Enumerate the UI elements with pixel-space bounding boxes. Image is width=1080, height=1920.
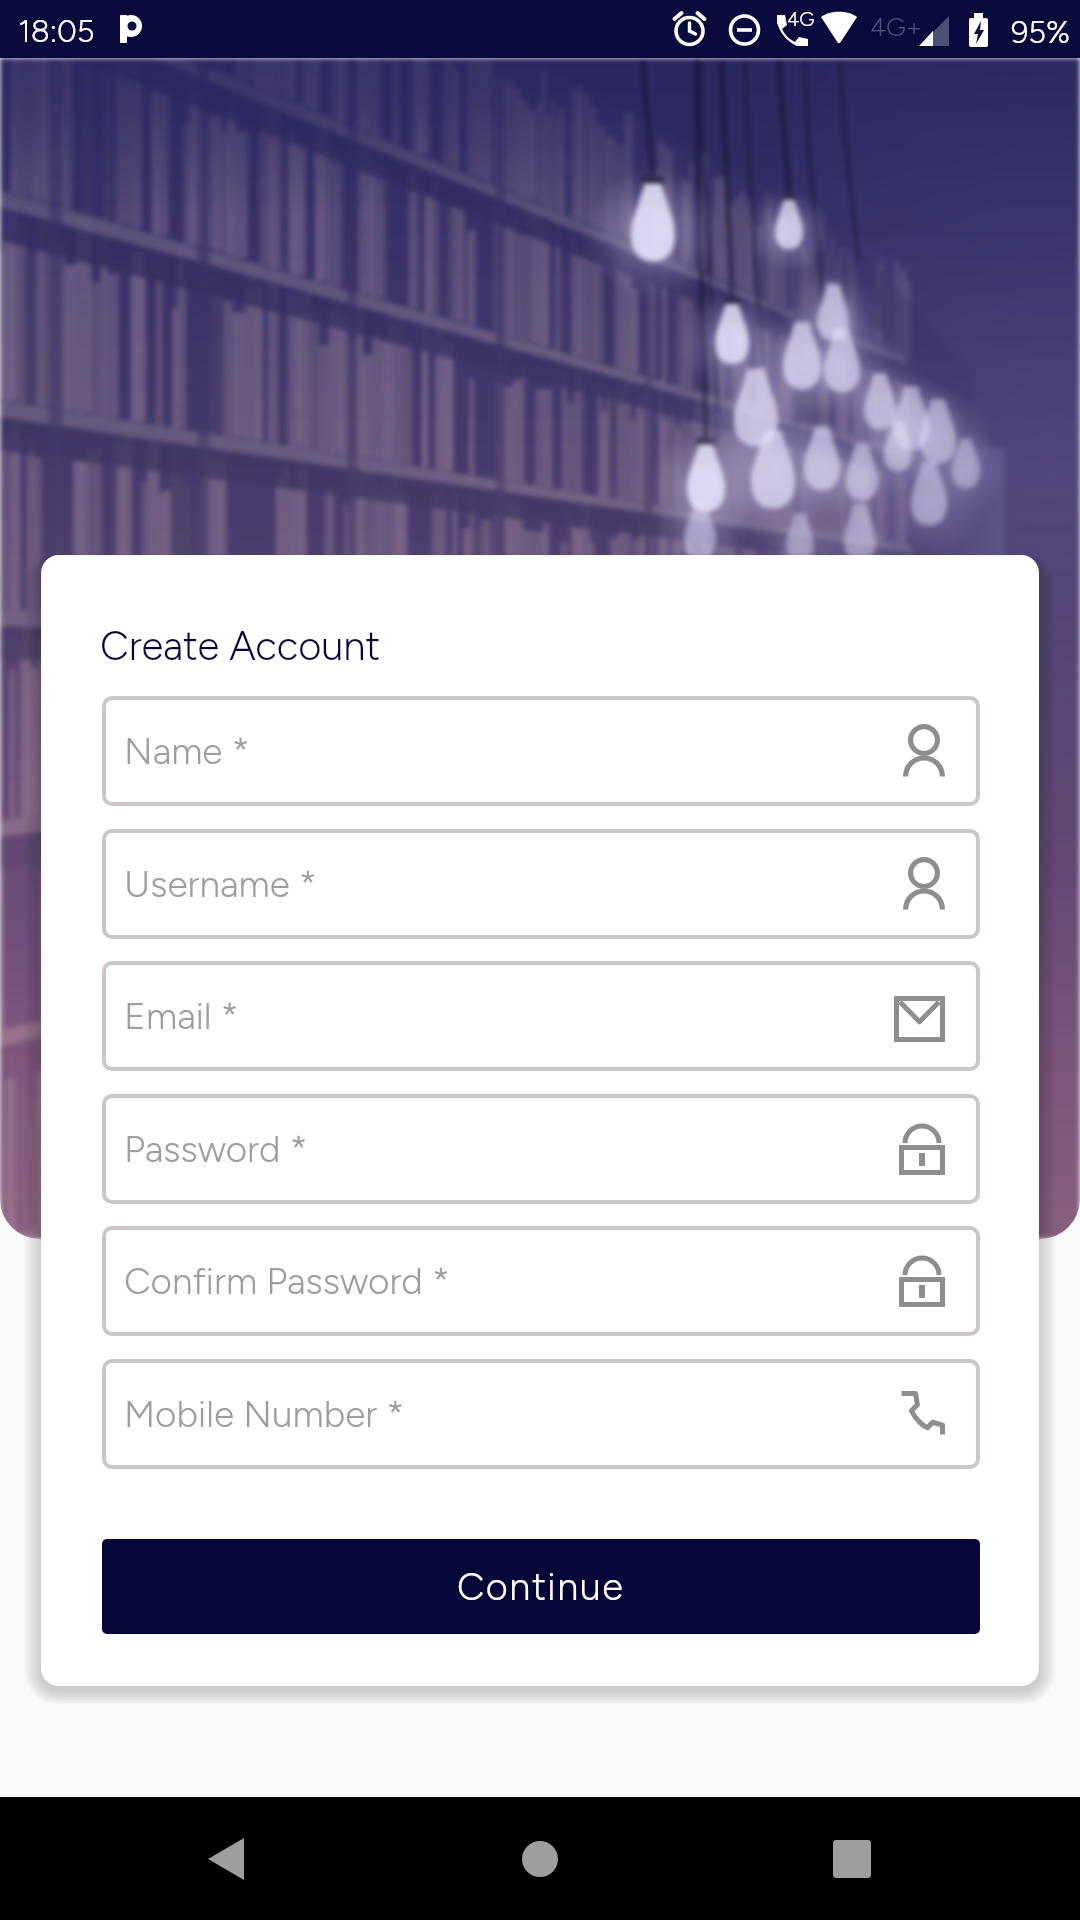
staticText: Name * [124,729,250,773]
staticText: Confirm Password * [124,1259,450,1303]
staticText: Email * [124,994,239,1038]
staticText: 18:05 [18,13,95,50]
button[interactable]: Home [492,1811,588,1907]
button[interactable]: Back [178,1811,274,1907]
button[interactable]: Recent apps [804,1811,900,1907]
staticText: 4G [787,7,815,31]
button[interactable]: Email * [102,961,980,1071]
staticText: 4G+ [870,11,923,42]
button[interactable]: Mobile Number * [102,1359,980,1469]
staticText: Create Account [100,622,381,670]
button[interactable]: Password * [102,1094,980,1204]
staticText: Password * [124,1127,308,1171]
staticText: Mobile Number * [124,1392,405,1436]
staticText: 95% [1011,14,1071,51]
staticText: Username * [124,862,317,906]
button[interactable]: Confirm Password * [102,1226,980,1336]
button[interactable]: Name * [102,696,980,806]
staticText: Continue [457,1564,625,1610]
button[interactable]: Continue [102,1539,980,1634]
button[interactable]: Username * [102,829,980,939]
